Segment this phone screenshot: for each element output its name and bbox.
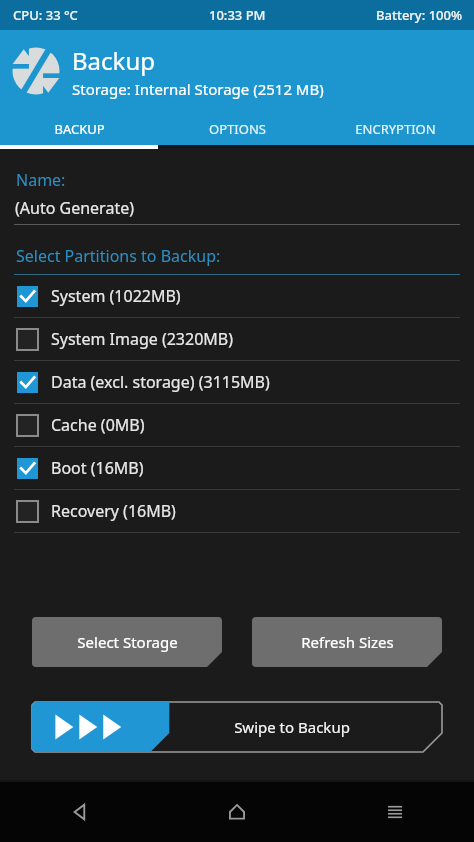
staticText: Backup bbox=[72, 44, 155, 77]
staticText: Battery: 100% bbox=[376, 6, 463, 24]
button[interactable]: Data (excl. storage) (3115MB) bbox=[0, 361, 474, 403]
button[interactable]: Back bbox=[0, 782, 158, 842]
button[interactable]: ENCRYPTION bbox=[316, 112, 474, 145]
staticText: BACKUP bbox=[54, 120, 105, 138]
button[interactable]: OPTIONS bbox=[158, 112, 316, 145]
button[interactable]: Home bbox=[158, 782, 316, 842]
button[interactable]: BACKUP bbox=[0, 112, 158, 145]
staticText: Select Partitions to Backup: bbox=[16, 245, 221, 267]
button[interactable]: System (1022MB) bbox=[0, 275, 474, 317]
button[interactable]: Cache (0MB) bbox=[0, 404, 474, 446]
staticText: (Auto Generate) bbox=[15, 197, 134, 219]
staticText: System (1022MB) bbox=[51, 285, 181, 307]
button[interactable]: Recent apps bbox=[316, 782, 474, 842]
staticText: Recovery (16MB) bbox=[51, 500, 176, 522]
staticText: Cache (0MB) bbox=[51, 414, 145, 436]
staticText: 10:33 PM bbox=[209, 6, 266, 24]
staticText: Boot (16MB) bbox=[51, 457, 144, 479]
button[interactable]: System Image (2320MB) bbox=[0, 318, 474, 360]
button[interactable]: Swipe to Backup bbox=[32, 702, 442, 752]
button[interactable]: Boot (16MB) bbox=[0, 447, 474, 489]
button[interactable]: Recovery (16MB) bbox=[0, 490, 474, 532]
staticText: OPTIONS bbox=[209, 120, 266, 138]
button[interactable]: Refresh Sizes bbox=[252, 617, 442, 667]
staticText: ENCRYPTION bbox=[355, 120, 436, 138]
staticText: Swipe to Backup bbox=[142, 717, 442, 737]
staticText: Data (excl. storage) (3115MB) bbox=[51, 371, 270, 393]
staticText: System Image (2320MB) bbox=[51, 328, 234, 350]
staticText: Storage: Internal Storage (2512 MB) bbox=[72, 79, 324, 99]
staticText: CPU: 33 °C bbox=[13, 6, 78, 24]
button[interactable]: Select Storage bbox=[32, 617, 222, 667]
staticText: Select Storage bbox=[77, 632, 178, 652]
staticText: Name: bbox=[16, 169, 66, 191]
staticText: Refresh Sizes bbox=[301, 632, 394, 652]
